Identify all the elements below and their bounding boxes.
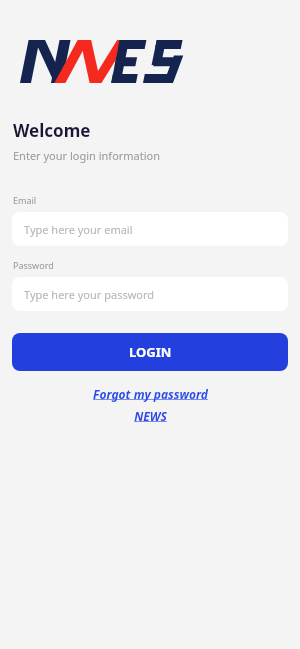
staticText: NEWS [134, 408, 167, 424]
staticText: Type here your email [24, 222, 133, 237]
button[interactable]: NEWS [12, 408, 288, 424]
staticText: Type here your password [24, 287, 155, 302]
staticText: Password [13, 259, 54, 271]
staticText: Enter your login information [13, 148, 161, 163]
button[interactable]: Type here your password [12, 277, 288, 311]
staticText: LOGIN [129, 343, 172, 361]
button[interactable]: LOGIN [12, 333, 288, 371]
staticText: Email [13, 194, 37, 206]
button[interactable]: Forgot my password [12, 386, 288, 402]
staticText: Welcome [13, 119, 91, 142]
staticText: Forgot my password [93, 386, 208, 402]
button[interactable]: Type here your email [12, 212, 288, 246]
